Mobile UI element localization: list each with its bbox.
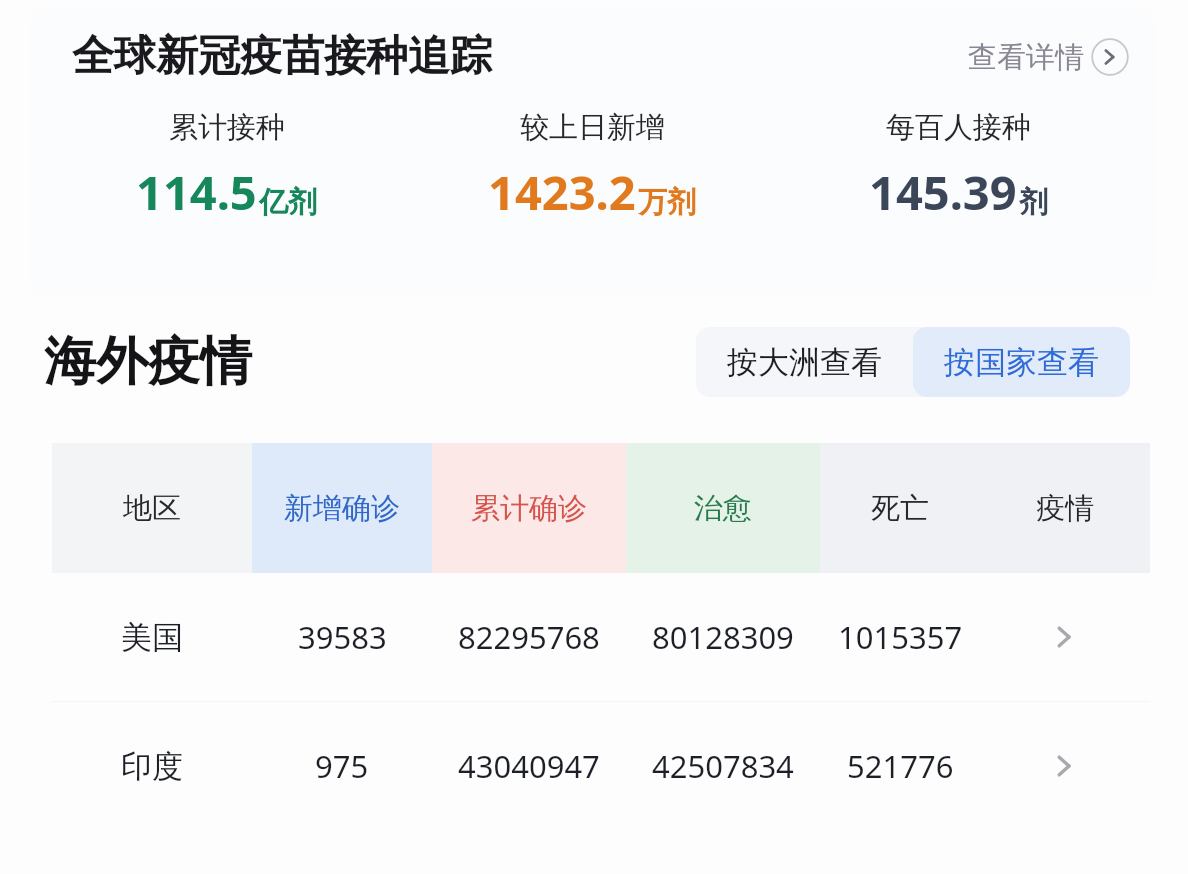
staticText: 145.39 xyxy=(869,160,1017,224)
button[interactable]: 按国家查看 xyxy=(913,327,1130,397)
button[interactable]: 按大洲查看 xyxy=(696,327,913,397)
other: 查看美国 详情 xyxy=(1048,620,1082,654)
staticText: 累计接种 xyxy=(169,109,285,146)
staticText: 42507834 xyxy=(652,745,794,787)
staticText: 39583 xyxy=(298,616,387,658)
staticText: 新增确诊 xyxy=(284,490,400,527)
staticText: 114.5 xyxy=(136,160,257,224)
staticText: 全球新冠疫苗接种追踪 xyxy=(72,30,492,83)
staticText: 82295768 xyxy=(458,616,600,658)
button[interactable]: 查看详情 xyxy=(964,34,1133,80)
staticText: 1015357 xyxy=(838,616,963,658)
staticText: 按国家查看 xyxy=(944,343,1099,382)
staticText: 43040947 xyxy=(458,745,600,787)
staticText: 剂 xyxy=(1019,184,1048,221)
staticText: 万剂 xyxy=(638,184,696,221)
other: 查看印度 详情 xyxy=(1048,749,1082,783)
staticText: 1423.2 xyxy=(488,160,636,224)
staticText: 80128309 xyxy=(652,616,794,658)
staticText: 较上日新增 xyxy=(520,109,665,146)
staticText: 521776 xyxy=(847,745,954,787)
staticText: 印度 xyxy=(121,747,183,786)
staticText: 查看详情 xyxy=(968,39,1084,76)
button[interactable]: 印度 xyxy=(52,702,1150,830)
staticText: 按大洲查看 xyxy=(727,343,882,382)
staticText: 每百人接种 xyxy=(886,109,1031,146)
staticText: 海外疫情 xyxy=(44,329,252,395)
staticText: 累计确诊 xyxy=(471,490,587,527)
staticText: 975 xyxy=(315,745,369,787)
staticText: 治愈 xyxy=(694,490,752,527)
staticText: 亿剂 xyxy=(259,184,317,221)
staticText: 死亡 xyxy=(871,490,929,527)
staticText: 美国 xyxy=(121,618,183,657)
button[interactable]: 美国 xyxy=(52,573,1150,701)
staticText: 疫情 xyxy=(1036,490,1094,527)
staticText: 地区 xyxy=(123,490,181,527)
